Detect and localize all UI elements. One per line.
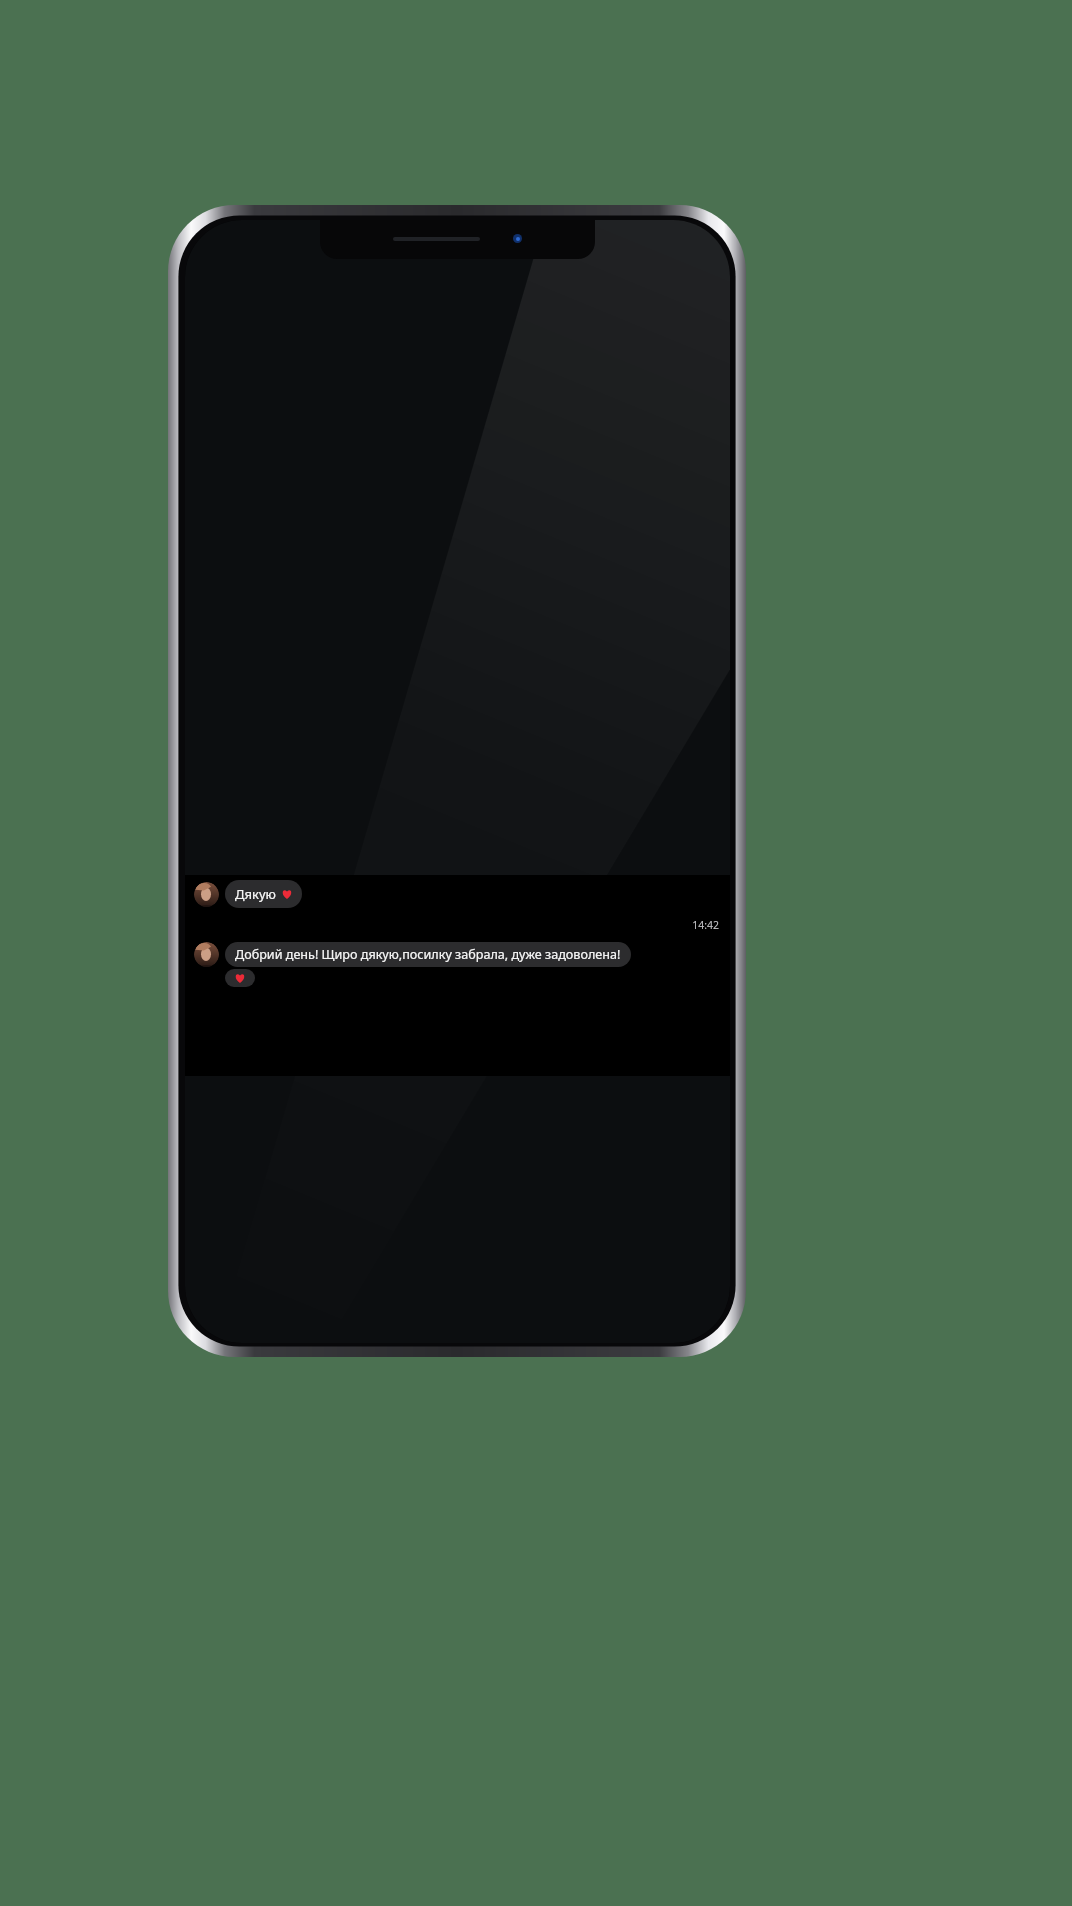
staticText: Добрий день! Щиро дякую,посилку забрала,… — [235, 946, 621, 963]
button[interactable]: Дякую — [225, 880, 302, 908]
button[interactable] — [225, 969, 255, 987]
button[interactable]: Contact avatar — [194, 942, 219, 967]
button[interactable]: Contact avatar — [194, 942, 631, 987]
button[interactable]: Contact avatar — [194, 880, 302, 908]
staticText: Дякую — [235, 885, 276, 903]
button[interactable]: Добрий день! Щиро дякую,посилку забрала,… — [225, 942, 631, 967]
button[interactable]: Contact avatar — [194, 882, 219, 907]
staticText: 14:42 — [692, 918, 719, 932]
